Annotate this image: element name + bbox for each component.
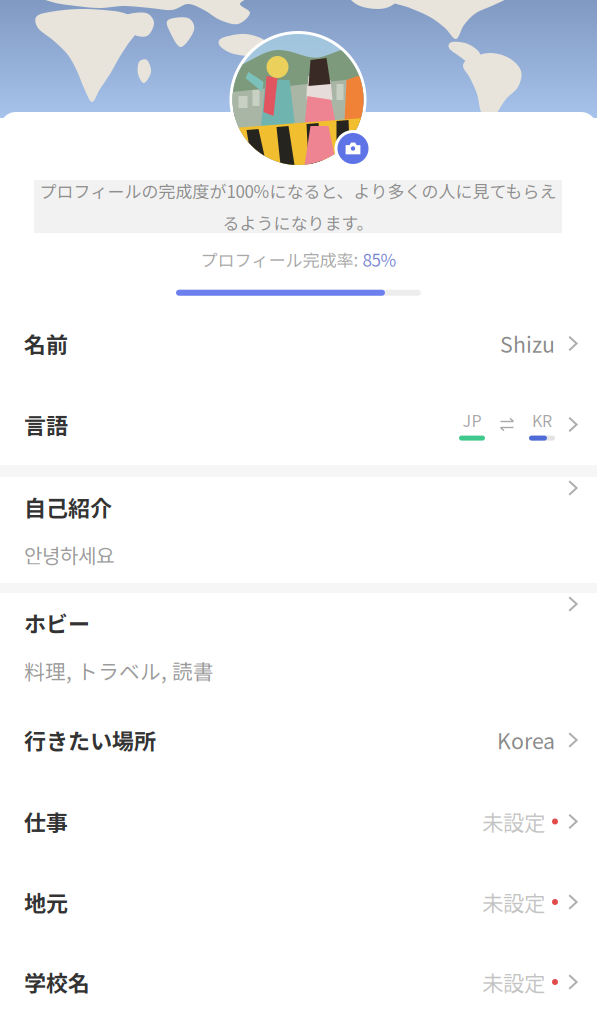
staticText: JP [462, 408, 481, 432]
staticText: 料理, トラベル, 読書 [24, 655, 214, 685]
button[interactable]: 仕事 [0, 781, 597, 862]
staticText: 안녕하세요 [24, 540, 114, 569]
staticText: ホビー [24, 607, 90, 638]
staticText: 85% [362, 247, 396, 272]
button[interactable]: 言語 [0, 384, 597, 465]
staticText: 行きたい場所 [24, 724, 156, 756]
button[interactable]: ホビー [0, 593, 597, 699]
button[interactable]: 学校名 [0, 942, 597, 1022]
button[interactable]: 地元 [0, 862, 597, 942]
staticText: Shizu [500, 328, 555, 359]
staticText: 地元 [24, 886, 68, 918]
staticText: 自己紹介 [24, 491, 112, 523]
staticText: 未設定 [482, 887, 545, 917]
button[interactable]: 自己紹介 [0, 477, 597, 583]
button[interactable]: 行きたい場所 [0, 699, 597, 781]
staticText: るようになります。 [222, 210, 373, 234]
staticText: Korea [497, 725, 555, 755]
button[interactable]: 写真を変更 [334, 130, 371, 167]
staticText: プロフィールの完成度が100%になると、より多くの人に見てもらえ [39, 178, 556, 203]
staticText: 未設定 [482, 806, 545, 837]
staticText: 未設定 [482, 967, 545, 997]
staticText: 学校名 [24, 966, 90, 998]
staticText: プロフィール完成率: [200, 247, 362, 272]
button[interactable]: 名前 [0, 303, 597, 384]
staticText: 名前 [24, 328, 68, 359]
staticText: 仕事 [24, 806, 68, 837]
staticText: KR [532, 408, 552, 432]
staticText: 言語 [24, 409, 68, 440]
